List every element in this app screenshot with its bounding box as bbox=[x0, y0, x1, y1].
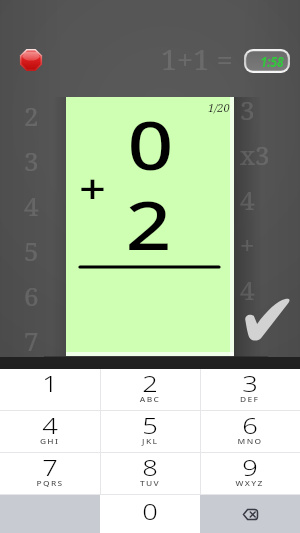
staticText: 4 bbox=[24, 188, 39, 223]
staticText: ABC bbox=[140, 394, 161, 404]
staticText: 2 bbox=[24, 98, 39, 133]
staticText: PQRS bbox=[36, 478, 64, 488]
staticText: 4 bbox=[42, 412, 58, 441]
staticText: DEF bbox=[240, 394, 260, 404]
staticText: 5 bbox=[142, 412, 158, 441]
staticText: MNO bbox=[238, 436, 263, 446]
staticText: 5 bbox=[24, 233, 39, 268]
staticText: x3 bbox=[240, 137, 270, 172]
staticText: 8 bbox=[142, 454, 158, 483]
button[interactable]: 6 bbox=[200, 411, 300, 452]
staticText: TUV bbox=[140, 478, 160, 488]
staticText: 3 bbox=[24, 143, 39, 178]
staticText: 6 bbox=[242, 412, 258, 441]
staticText: + bbox=[240, 227, 255, 262]
staticText: WXYZ bbox=[235, 478, 264, 488]
staticText: 1 bbox=[42, 370, 58, 399]
button[interactable]: 3 bbox=[200, 369, 300, 410]
staticText: 2 bbox=[125, 177, 171, 270]
button[interactable]: 5 bbox=[100, 411, 200, 452]
staticText: 0 bbox=[127, 97, 173, 190]
staticText: 1/20 bbox=[208, 100, 230, 115]
staticText: JKL bbox=[142, 436, 159, 446]
button[interactable]: Delete bbox=[200, 495, 300, 533]
button[interactable]: Stop bbox=[19, 48, 44, 72]
staticText: 4 bbox=[240, 182, 255, 217]
staticText: 7 bbox=[42, 454, 58, 483]
button[interactable]: 1/20 bbox=[66, 97, 234, 356]
staticText: 0 bbox=[142, 498, 158, 527]
staticText: 4 bbox=[240, 272, 255, 307]
staticText: 1:58 bbox=[261, 53, 284, 71]
button[interactable]: 2 bbox=[100, 369, 200, 410]
button[interactable]: Correct bbox=[243, 297, 291, 341]
staticText: 7 bbox=[24, 323, 39, 358]
staticText: 3 bbox=[242, 370, 258, 399]
staticText: GHI bbox=[40, 436, 60, 446]
staticText: 6 bbox=[24, 278, 39, 313]
staticText: 9 bbox=[242, 454, 258, 483]
staticText: 1+1 = bbox=[161, 41, 233, 78]
button[interactable]: 9 bbox=[200, 453, 300, 494]
staticText: + bbox=[79, 160, 106, 214]
button[interactable]: 7 bbox=[0, 453, 100, 494]
button[interactable]: 0 bbox=[100, 495, 200, 533]
button[interactable]: 8 bbox=[100, 453, 200, 494]
button[interactable]: 1:58 bbox=[244, 49, 290, 73]
button[interactable]: 4 bbox=[0, 411, 100, 452]
staticText: 2 bbox=[142, 370, 158, 399]
staticText: 3 bbox=[240, 92, 255, 127]
button[interactable]: 1 bbox=[0, 369, 100, 410]
